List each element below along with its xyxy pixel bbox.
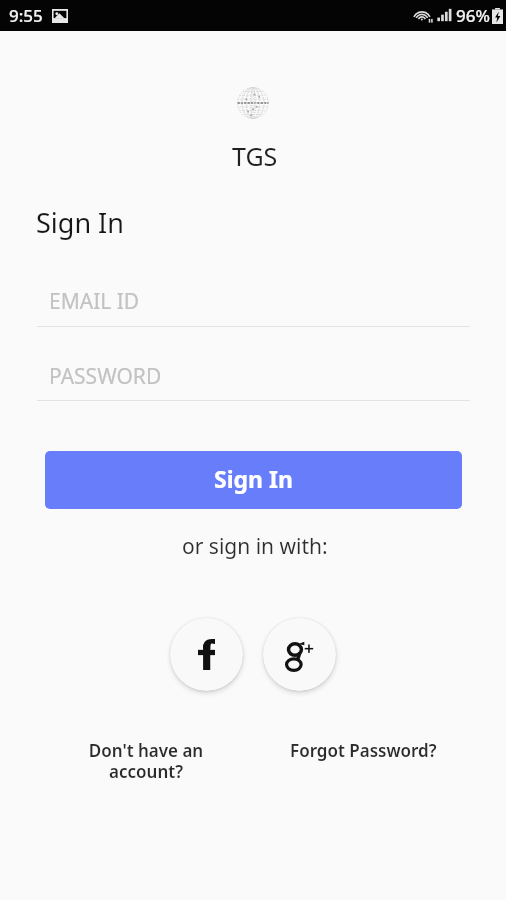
button[interactable]: Sign in with Google Plus bbox=[263, 618, 336, 691]
button[interactable]: Sign In bbox=[45, 451, 462, 509]
staticText: TGS bbox=[232, 139, 278, 173]
staticText: 96% bbox=[456, 4, 490, 27]
staticText: EMAIL ID bbox=[49, 287, 140, 316]
button[interactable]: Forgot Password? bbox=[290, 739, 437, 762]
staticText: Sign In bbox=[214, 463, 293, 494]
staticText: 9:55 bbox=[9, 4, 43, 27]
button[interactable]: PASSWORD bbox=[37, 355, 470, 401]
button[interactable]: Don't have an account? bbox=[75, 739, 217, 783]
staticText: Don't have an account? bbox=[75, 739, 217, 783]
staticText: Forgot Password? bbox=[290, 739, 437, 762]
staticText: or sign in with: bbox=[182, 532, 328, 561]
button[interactable]: Sign in with Facebook bbox=[170, 618, 243, 691]
staticText: Sign In bbox=[36, 204, 124, 241]
button[interactable]: EMAIL ID bbox=[37, 280, 470, 327]
staticText: PASSWORD bbox=[49, 362, 162, 391]
